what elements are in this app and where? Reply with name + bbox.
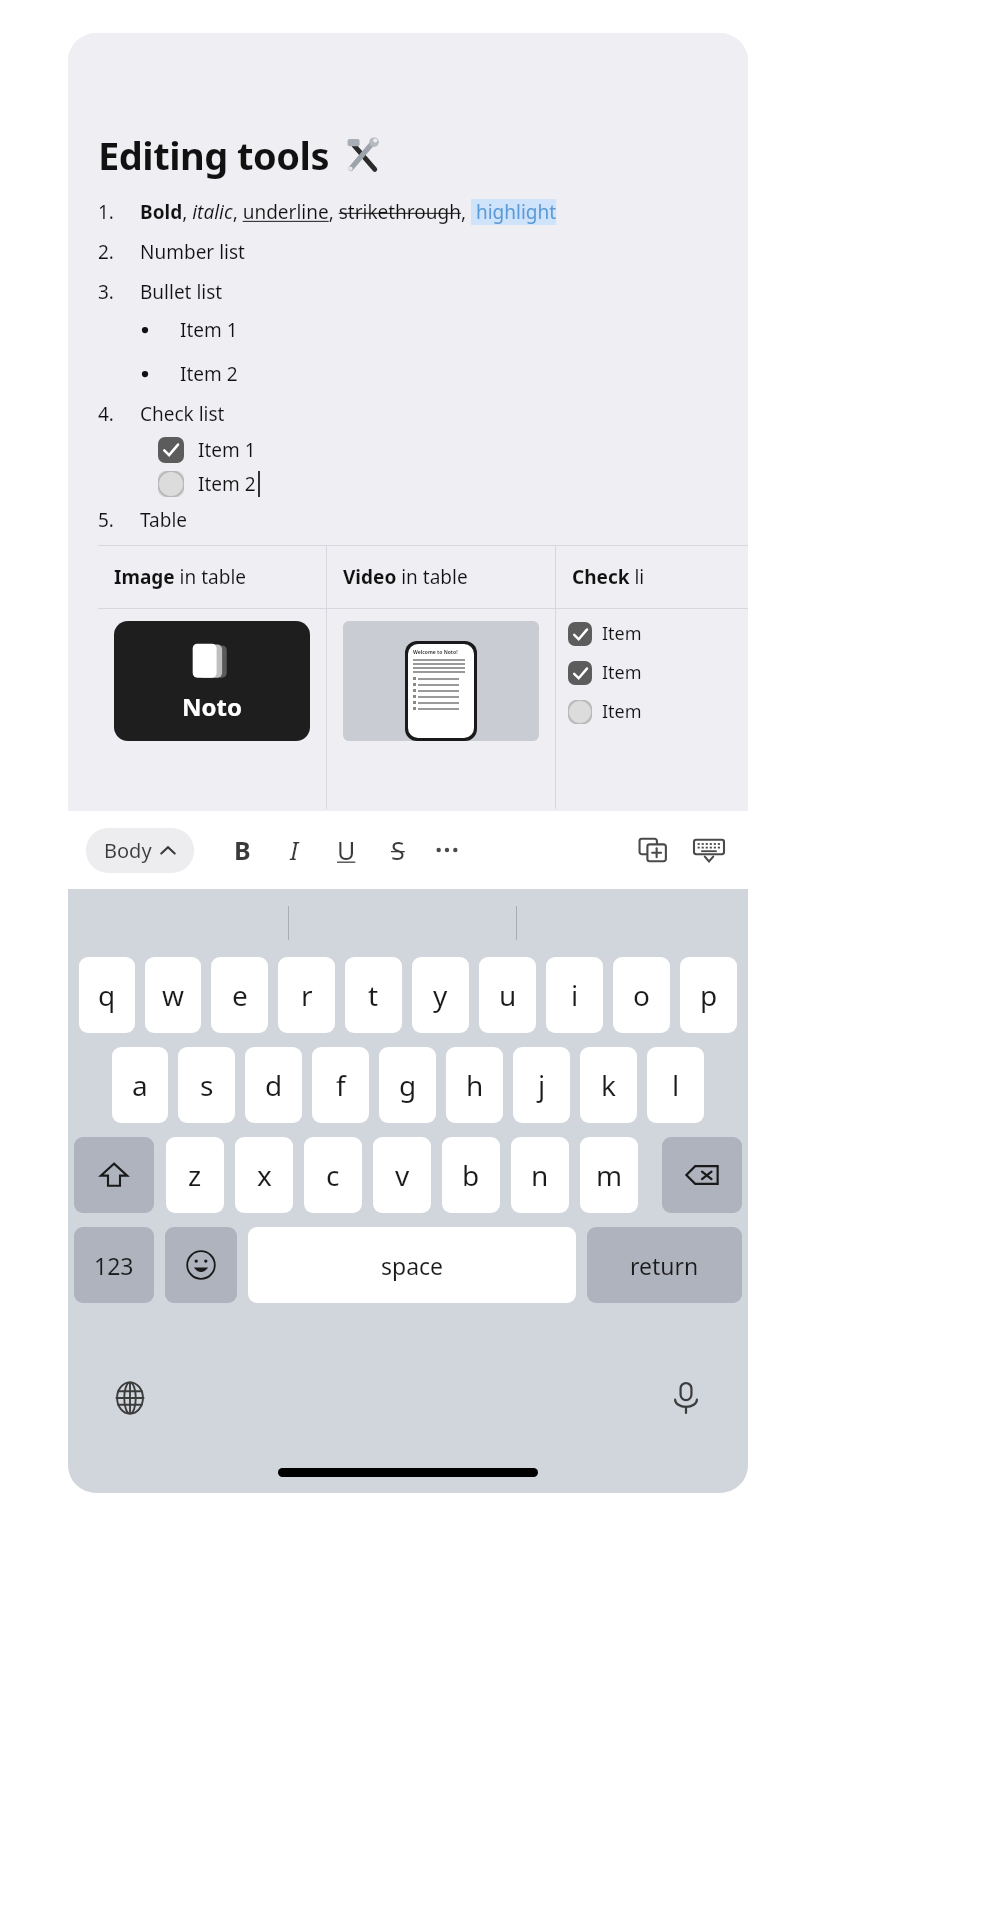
button[interactable]: i (546, 957, 603, 1033)
staticText: m (596, 1156, 623, 1194)
button[interactable]: Backspace (662, 1137, 742, 1213)
button[interactable]: 123 (74, 1227, 154, 1303)
button[interactable]: Item (568, 699, 642, 724)
button[interactable]: y (412, 957, 469, 1033)
button[interactable]: g (379, 1047, 436, 1123)
button[interactable]: More formatting options (424, 827, 470, 873)
staticText: p (700, 976, 718, 1014)
button[interactable]: B (216, 824, 268, 876)
staticText: c (326, 1156, 340, 1194)
staticText: j (538, 1066, 546, 1104)
button[interactable]: f (312, 1047, 369, 1123)
button[interactable]: o (613, 957, 670, 1033)
staticText: v (395, 1156, 410, 1194)
button[interactable]: Insert media (628, 825, 678, 875)
staticText: 123 (94, 1250, 134, 1281)
button[interactable]: h (446, 1047, 503, 1123)
button[interactable]: I (268, 824, 320, 876)
button[interactable]: Emoji (165, 1227, 237, 1303)
button[interactable]: t (345, 957, 402, 1033)
staticText: S (391, 833, 405, 867)
staticText: z (188, 1156, 202, 1194)
button[interactable]: Change keyboard language (106, 1374, 154, 1422)
staticText: Item (602, 699, 642, 724)
staticText: e (232, 976, 248, 1014)
staticText: Item (602, 660, 642, 685)
staticText: Image in table (114, 564, 246, 590)
staticText: b (462, 1156, 480, 1194)
button[interactable]: l (647, 1047, 704, 1123)
staticText: Item 2 (180, 361, 238, 387)
button[interactable]: S (372, 824, 424, 876)
staticText: Body (104, 837, 152, 864)
staticText: U (337, 833, 356, 867)
staticText: 5. (98, 507, 114, 533)
button[interactable]: a (112, 1047, 168, 1123)
button[interactable]: m (580, 1137, 638, 1213)
staticText: d (265, 1066, 283, 1104)
staticText: t (368, 976, 379, 1014)
button[interactable]: space (248, 1227, 576, 1303)
staticText: Welcome to Noto! (413, 649, 458, 656)
staticText: s (200, 1066, 214, 1104)
button[interactable]: Shift (74, 1137, 154, 1213)
button[interactable]: u (479, 957, 536, 1033)
staticText: g (399, 1066, 417, 1104)
staticText: Editing tools (98, 129, 330, 181)
button[interactable]: U (320, 824, 372, 876)
staticText: Check list (140, 401, 225, 427)
button[interactable]: return (587, 1227, 742, 1303)
staticText: o (633, 976, 650, 1014)
button[interactable]: z (166, 1137, 224, 1213)
staticText: h (466, 1066, 484, 1104)
staticText: Bold, italic, underline, strikethrough, … (140, 199, 562, 225)
button[interactable]: Body (86, 828, 194, 873)
button[interactable]: r (278, 957, 335, 1033)
button[interactable]: x (235, 1137, 293, 1213)
staticText: q (98, 976, 116, 1014)
staticText: Item 2 (198, 471, 256, 497)
button[interactable]: Item 1 (98, 437, 748, 463)
button[interactable]: d (245, 1047, 302, 1123)
staticText: I (290, 833, 299, 867)
button[interactable]: Item (568, 660, 642, 685)
button[interactable]: q (79, 957, 135, 1033)
staticText: 4. (98, 401, 114, 427)
staticText: Video in table (343, 564, 468, 590)
button[interactable]: b (442, 1137, 500, 1213)
button[interactable]: Item 2 (98, 471, 748, 497)
staticText: a (132, 1066, 148, 1104)
button[interactable]: k (580, 1047, 637, 1123)
staticText: l (672, 1066, 680, 1104)
staticText: n (531, 1156, 549, 1194)
staticText: Number list (140, 239, 245, 265)
button[interactable]: s (178, 1047, 235, 1123)
button[interactable]: Item (568, 621, 642, 646)
staticText: B (234, 833, 251, 867)
staticText: Check li (572, 564, 645, 590)
button[interactable]: w (145, 957, 201, 1033)
staticText: 2. (98, 239, 114, 265)
staticText: w (162, 976, 185, 1014)
button[interactable]: c (304, 1137, 362, 1213)
button[interactable]: p (680, 957, 737, 1033)
staticText: Item 1 (198, 437, 256, 463)
button[interactable]: Hide keyboard (684, 825, 734, 875)
button[interactable]: e (211, 957, 268, 1033)
staticText: space (381, 1250, 444, 1281)
button[interactable]: v (373, 1137, 431, 1213)
staticText: y (433, 976, 448, 1014)
staticText: u (499, 976, 517, 1014)
staticText: f (336, 1066, 346, 1104)
staticText: Bullet list (140, 279, 223, 305)
button[interactable]: j (513, 1047, 570, 1123)
staticText: Noto (182, 690, 242, 723)
staticText: k (601, 1066, 616, 1104)
staticText: Item (602, 621, 642, 646)
button[interactable]: n (511, 1137, 569, 1213)
staticText: i (571, 976, 579, 1014)
staticText: Table (140, 507, 188, 533)
button[interactable]: Voice input (662, 1374, 710, 1422)
staticText: Item 1 (180, 317, 238, 343)
staticText: x (257, 1156, 272, 1194)
